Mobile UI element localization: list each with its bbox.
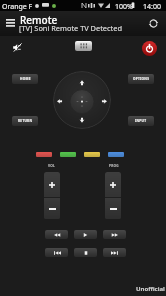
button[interactable]: Power [142,41,157,56]
button[interactable]: Play [74,230,97,239]
button[interactable]: PROG up [105,172,121,197]
staticText: VOL [48,164,56,168]
button[interactable]: OPTIONS [128,74,154,84]
button[interactable]: Open navigation menu [2,15,18,31]
button[interactable]: Colour key 3 [84,152,100,157]
staticText: INPUT [135,119,147,123]
button[interactable]: Previous [45,248,68,257]
staticText: RETURN [18,119,33,123]
button[interactable]: Colour key 1 [36,152,52,157]
button[interactable]: RETURN [12,116,38,126]
button[interactable]: Stop [74,248,97,257]
staticText: 14:00 [143,2,161,12]
button[interactable]: Mute [9,39,25,55]
button[interactable]: Rewind [45,230,68,239]
button[interactable]: VOL down [44,198,60,219]
button[interactable]: Refresh [145,15,162,32]
staticText: 100% [115,2,133,12]
button[interactable]: Direction pad [53,71,111,129]
staticText: [TV] Soni Remote TV Detected [19,23,122,33]
button[interactable]: INPUT [128,116,154,126]
button[interactable]: Colour key 2 [60,152,76,157]
staticText: Remote [20,13,58,27]
button[interactable]: Colour key 4 [108,152,124,157]
button[interactable]: VOL up [44,172,60,197]
staticText: PROG [109,164,119,168]
button[interactable]: Fast forward [103,230,126,239]
button[interactable]: HOME [12,74,38,84]
staticText: HOME [20,77,31,81]
button[interactable]: PROG down [105,198,121,219]
staticText: OPTIONS [133,77,150,81]
button[interactable]: Number keypad [75,41,92,51]
staticText: Unofficial [136,285,165,293]
staticText: Orange F [2,2,33,12]
button[interactable]: Next [103,248,126,257]
